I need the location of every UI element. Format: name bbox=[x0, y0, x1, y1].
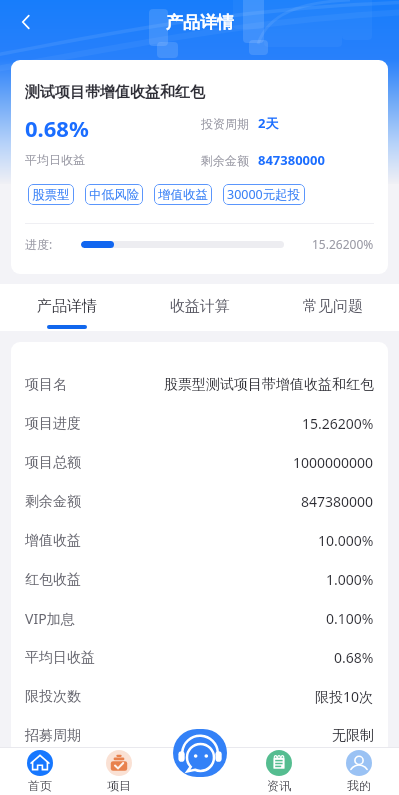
button[interactable]: 资讯 bbox=[239, 747, 319, 795]
staticText: VIP加息 bbox=[25, 609, 75, 628]
staticText: 产品详情 bbox=[37, 297, 97, 316]
button[interactable]: 股票型 bbox=[28, 184, 74, 205]
staticText: 限投次数 bbox=[25, 688, 81, 706]
button[interactable]: 客服 bbox=[173, 729, 227, 777]
staticText: 剩余金额 bbox=[201, 153, 249, 168]
button[interactable]: 30000元起投 bbox=[223, 184, 305, 205]
button[interactable]: 项目名 bbox=[11, 365, 388, 404]
button[interactable]: 首页 bbox=[0, 747, 79, 795]
staticText: 847380000 bbox=[301, 492, 374, 511]
staticText: 无限制 bbox=[332, 727, 374, 745]
staticText: 平均日收益 bbox=[25, 152, 85, 167]
staticText: 10.000% bbox=[318, 531, 374, 550]
staticText: 15.26200% bbox=[312, 236, 374, 252]
staticText: 股票型测试项目带增值收益和红包 bbox=[164, 376, 374, 394]
staticText: 限投10次 bbox=[315, 687, 374, 706]
button[interactable]: VIP加息 bbox=[11, 599, 388, 638]
staticText: 847380000 bbox=[258, 151, 325, 169]
staticText: 产品详情 bbox=[166, 12, 234, 33]
button[interactable]: Back bbox=[6, 2, 46, 42]
staticText: 0.100% bbox=[326, 609, 374, 628]
button[interactable]: 我的 bbox=[319, 747, 399, 795]
button[interactable]: 增值收益 bbox=[11, 521, 388, 560]
button[interactable]: 平均日收益 bbox=[11, 638, 388, 677]
staticText: 常见问题 bbox=[303, 297, 363, 316]
button[interactable]: 增值收益 bbox=[154, 184, 212, 205]
staticText: 15.26200% bbox=[302, 414, 374, 433]
staticText: 增值收益 bbox=[158, 187, 208, 203]
staticText: 1000000000 bbox=[293, 453, 374, 472]
staticText: 我的 bbox=[347, 778, 371, 793]
staticText: 股票型 bbox=[32, 187, 70, 203]
staticText: 项目总额 bbox=[25, 454, 81, 472]
button[interactable]: 项目 bbox=[79, 747, 159, 795]
button[interactable]: 招募周期 bbox=[11, 716, 388, 755]
button[interactable]: 常见问题 bbox=[266, 284, 399, 331]
staticText: 资讯 bbox=[267, 778, 291, 793]
staticText: 测试项目带增值收益和红包 bbox=[25, 83, 205, 102]
staticText: 2天 bbox=[258, 114, 279, 132]
staticText: 剩余金额 bbox=[25, 493, 81, 511]
button[interactable]: 收益计算 bbox=[133, 284, 266, 331]
button[interactable]: 项目总额 bbox=[11, 443, 388, 482]
staticText: 平均日收益 bbox=[25, 649, 95, 667]
staticText: 0.68% bbox=[25, 113, 89, 143]
staticText: 项目名 bbox=[25, 376, 67, 394]
staticText: 30000元起投 bbox=[227, 186, 301, 203]
staticText: 招募周期 bbox=[25, 727, 81, 745]
staticText: 增值收益 bbox=[25, 532, 81, 550]
staticText: 进度: bbox=[25, 236, 53, 252]
button[interactable]: 限投次数 bbox=[11, 677, 388, 716]
staticText: 项目进度 bbox=[25, 415, 81, 433]
staticText: 首页 bbox=[28, 778, 52, 793]
staticText: 项目 bbox=[107, 778, 131, 793]
button[interactable]: 产品详情 bbox=[0, 284, 133, 331]
button[interactable]: 红包收益 bbox=[11, 560, 388, 599]
staticText: 红包收益 bbox=[25, 571, 81, 589]
button[interactable]: 中低风险 bbox=[85, 184, 143, 205]
staticText: 收益计算 bbox=[170, 297, 230, 316]
staticText: 中低风险 bbox=[89, 187, 139, 203]
button[interactable]: 项目进度 bbox=[11, 404, 388, 443]
button[interactable]: 剩余金额 bbox=[11, 482, 388, 521]
staticText: 0.68% bbox=[334, 648, 374, 667]
staticText: 1.000% bbox=[326, 570, 374, 589]
staticText: 投资周期 bbox=[201, 116, 249, 131]
